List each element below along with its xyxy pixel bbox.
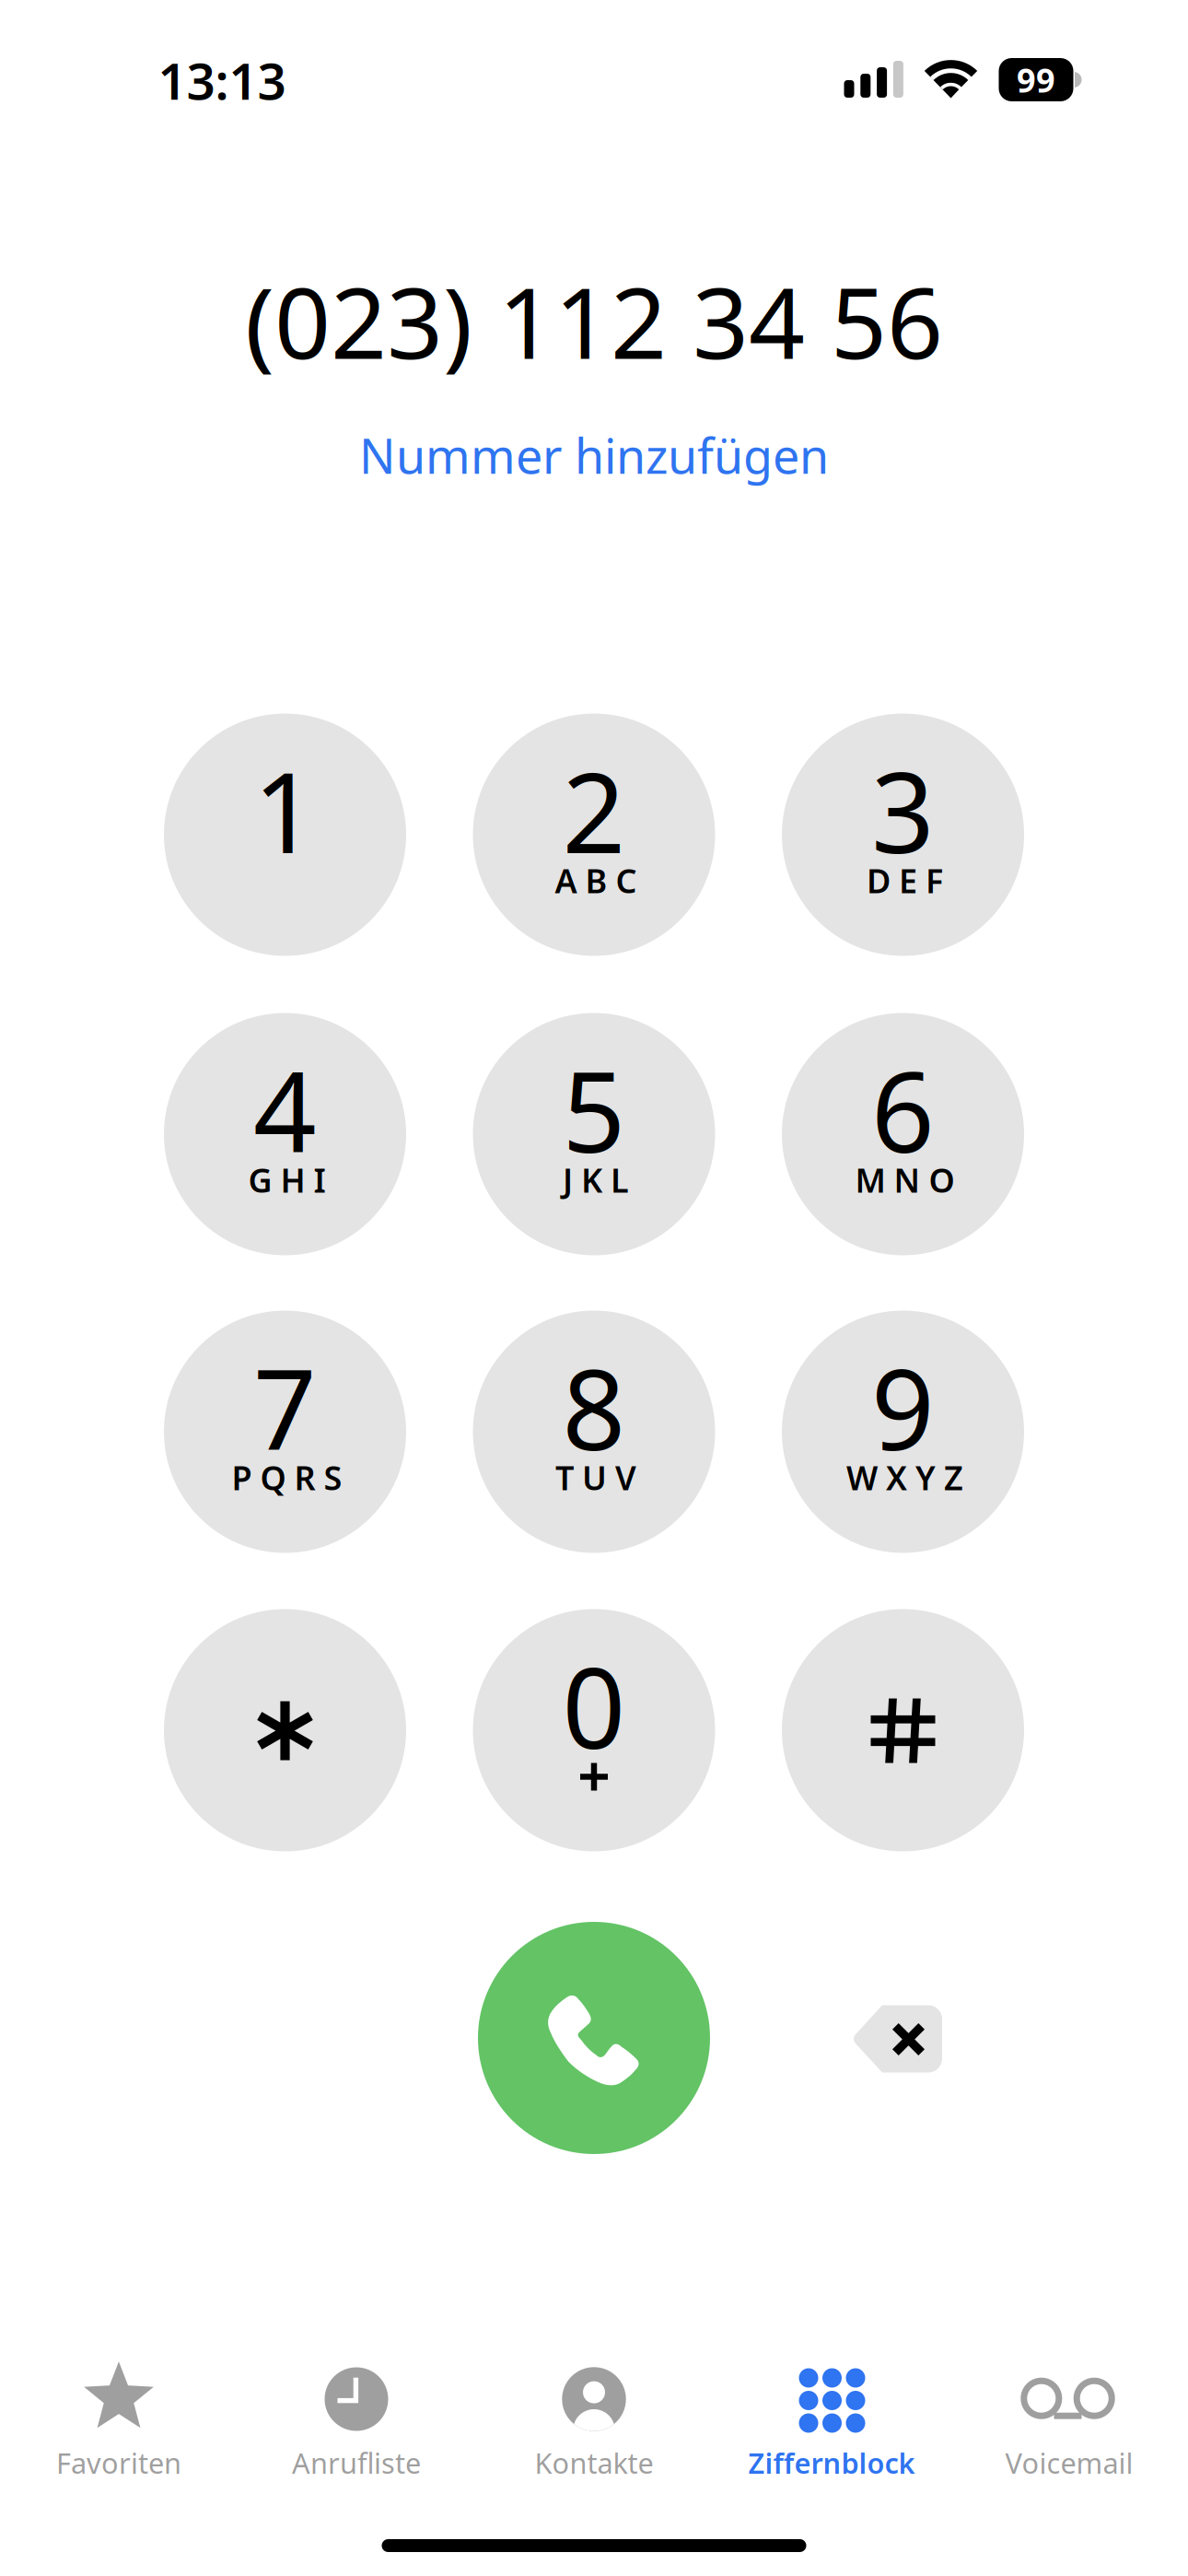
button[interactable]: Kontakte <box>475 2348 713 2495</box>
button[interactable]: 9 <box>782 1311 1024 1553</box>
staticText: 99 <box>1017 58 1055 102</box>
staticText: 4 <box>253 1036 317 1183</box>
button[interactable]: Favoriten <box>0 2348 238 2495</box>
button[interactable]: 7 <box>164 1311 406 1553</box>
button[interactable] <box>782 1609 1024 1851</box>
button[interactable]: 5 <box>473 1013 715 1255</box>
button[interactable]: 0 <box>473 1609 715 1851</box>
button[interactable]: 8 <box>473 1311 715 1553</box>
button[interactable]: Anrufliste <box>238 2348 475 2495</box>
button[interactable]: Voicemail <box>950 2348 1188 2495</box>
staticText: JKL <box>563 1158 629 1202</box>
staticText: WXYZ <box>846 1455 963 1499</box>
staticText: Nummer hinzufügen <box>359 423 829 487</box>
staticText: 0 <box>562 1632 626 1779</box>
staticText: TUV <box>555 1455 636 1499</box>
staticText: 6 <box>871 1036 935 1183</box>
staticText: 9 <box>871 1334 935 1481</box>
staticText: DEF <box>867 858 943 902</box>
button[interactable]: Nummer hinzufügen <box>336 416 852 495</box>
staticText: 8 <box>562 1334 626 1481</box>
staticText: 13:13 <box>158 47 286 114</box>
button[interactable]: 4 <box>164 1013 406 1255</box>
staticText: PQRS <box>232 1455 342 1499</box>
button[interactable]: 1 <box>164 714 406 956</box>
button[interactable]: Ziffernblock <box>713 2348 950 2495</box>
staticText: ABC <box>555 858 637 902</box>
staticText: 2 <box>562 737 626 884</box>
staticText: GHI <box>248 1158 326 1202</box>
staticText: 5 <box>562 1036 626 1183</box>
staticText: MNO <box>855 1158 955 1202</box>
button[interactable]: 6 <box>782 1013 1024 1255</box>
button[interactable] <box>164 1609 406 1851</box>
button[interactable]: 2 <box>473 714 715 956</box>
button[interactable]: Löschen <box>852 2005 942 2073</box>
staticText: (023) 112 34 56 <box>245 255 943 386</box>
staticText: Voicemail <box>1005 2444 1133 2481</box>
button[interactable]: Anrufen <box>478 1922 710 2154</box>
staticText: Anrufliste <box>292 2444 421 2481</box>
staticText: 1 <box>253 737 317 884</box>
staticText: 7 <box>253 1334 317 1481</box>
staticText: Ziffernblock <box>748 2444 915 2481</box>
staticText: Kontakte <box>535 2444 653 2481</box>
button[interactable]: 3 <box>782 714 1024 956</box>
staticText: 3 <box>871 737 935 884</box>
staticText: Favoriten <box>56 2444 181 2481</box>
